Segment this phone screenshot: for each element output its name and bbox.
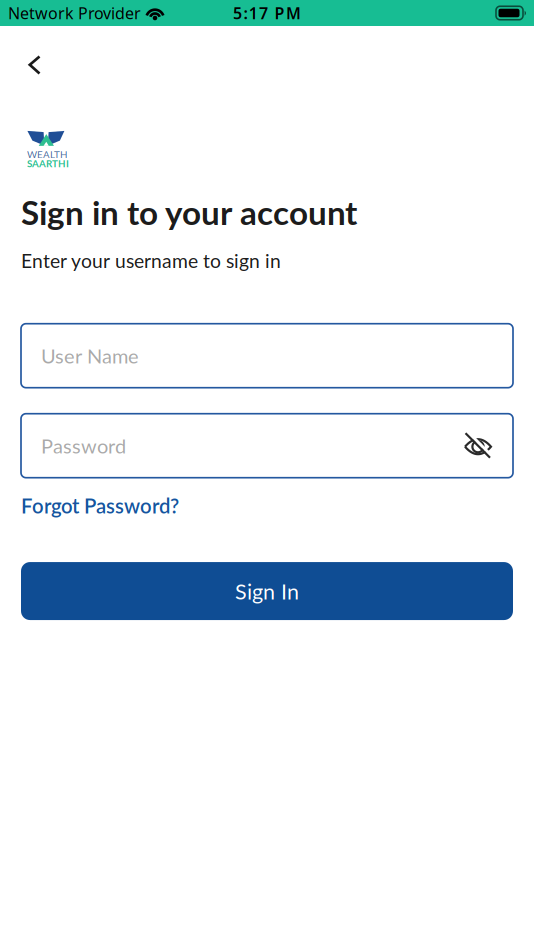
- staticText: Password: [41, 434, 126, 458]
- staticText: Sign in to your account: [21, 192, 357, 232]
- staticText: User Name: [41, 344, 139, 368]
- staticText: Forgot Password?: [21, 493, 179, 518]
- staticText: Network Provider: [8, 2, 141, 24]
- staticText: Sign In: [235, 578, 299, 604]
- staticText: SAARTHI: [27, 158, 69, 169]
- staticText: WEALTH: [27, 148, 67, 160]
- staticText: Enter your username to sign in: [21, 249, 281, 272]
- button[interactable]: Sign In: [0, 562, 534, 620]
- button[interactable]: User Name: [0, 324, 534, 388]
- button[interactable]: Forgot Password?: [0, 493, 179, 518]
- button[interactable]: [463, 431, 513, 461]
- staticText: 5:17 PM: [233, 2, 301, 24]
- button[interactable]: [0, 26, 41, 75]
- button[interactable]: Password: [0, 414, 534, 478]
